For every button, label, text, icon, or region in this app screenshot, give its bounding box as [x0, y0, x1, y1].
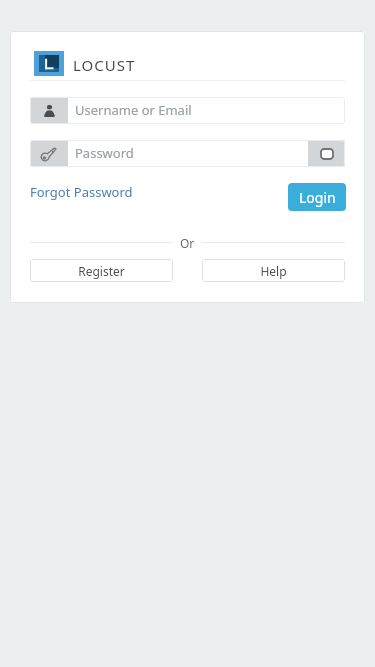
staticText: Help	[260, 263, 287, 279]
button[interactable]: Forgot Password	[30, 183, 133, 201]
staticText: LOCUST	[73, 55, 136, 75]
staticText: Register	[78, 263, 125, 279]
staticText: Password	[75, 144, 308, 162]
button[interactable]: Show password	[308, 140, 345, 167]
staticText: Or	[180, 235, 195, 251]
button[interactable]: Help	[202, 259, 345, 282]
button[interactable]: Register	[30, 259, 173, 282]
staticText: Username or Email	[75, 101, 345, 119]
button[interactable]: Username or Email	[30, 97, 345, 124]
staticText: Login	[299, 188, 336, 207]
button[interactable]: Login	[288, 183, 346, 211]
button[interactable]: Password	[30, 140, 345, 167]
